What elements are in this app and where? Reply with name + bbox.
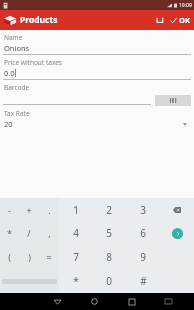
staticText: - (8, 204, 11, 216)
button[interactable]: 3 (126, 198, 160, 221)
staticText: 0 (106, 274, 112, 288)
staticText: Price without taxes (4, 58, 62, 67)
staticText: 10:09 (179, 2, 192, 9)
staticText: 0.0 (4, 68, 15, 78)
staticText: Name (4, 33, 23, 42)
button[interactable]: - (0, 198, 19, 221)
staticText: Products (20, 14, 58, 26)
button[interactable]: Tax rate dropdown (180, 119, 190, 129)
staticText: Onions (4, 43, 30, 53)
button[interactable]: Hide keyboard (150, 293, 187, 310)
staticText: / (27, 227, 31, 239)
button[interactable]: 1 (59, 198, 92, 221)
button[interactable]: Backspace (160, 198, 194, 221)
staticText: 3 (140, 203, 146, 217)
staticText: # (140, 274, 147, 288)
button[interactable]: * (0, 221, 19, 245)
staticText: Tax Rate (4, 109, 30, 118)
staticText: ( (8, 251, 11, 263)
staticText: 4 (73, 226, 79, 240)
button[interactable]: . (39, 198, 59, 221)
button[interactable]: Home (76, 293, 113, 310)
staticText: 7 (73, 250, 79, 264)
button[interactable]: * (59, 269, 92, 293)
button[interactable]: / (19, 221, 39, 245)
button[interactable]: Scan barcode (155, 95, 191, 106)
button[interactable]: Undo (152, 11, 168, 29)
button[interactable]: # (126, 269, 160, 293)
staticText: 5 (106, 226, 112, 240)
staticText: 2 (106, 203, 112, 217)
button[interactable]: Back (39, 293, 76, 310)
button[interactable]: + (19, 198, 39, 221)
button[interactable]: ( (0, 245, 19, 269)
staticText: 6 (140, 226, 146, 240)
staticText: ) (28, 251, 31, 263)
button[interactable]: = (39, 245, 59, 269)
button[interactable]: 6 (126, 221, 160, 245)
button[interactable]: 7 (59, 245, 92, 269)
button[interactable]: 4 (59, 221, 92, 245)
button[interactable]: 9 (126, 245, 160, 269)
button[interactable]: Enter (160, 221, 194, 245)
staticText: = (46, 251, 52, 263)
staticText: 9 (140, 250, 146, 264)
staticText: 8 (106, 250, 112, 264)
staticText: Barcode (4, 83, 30, 92)
staticText: * (73, 274, 79, 288)
button[interactable]: 8 (92, 245, 126, 269)
button[interactable]: Recent apps (113, 293, 150, 310)
staticText: , (48, 227, 51, 239)
staticText: 20 (4, 119, 180, 129)
staticText: . (48, 204, 51, 216)
button[interactable]: , (39, 221, 59, 245)
button[interactable]: 0 (92, 269, 126, 293)
button[interactable]: 2 (92, 198, 126, 221)
staticText: OK (179, 15, 190, 25)
button[interactable]: 5 (92, 221, 126, 245)
staticText: 1 (73, 203, 79, 217)
button[interactable]: OK (170, 11, 190, 29)
staticText: + (26, 204, 32, 216)
staticText: * (7, 227, 12, 239)
button[interactable]: ) (19, 245, 39, 269)
